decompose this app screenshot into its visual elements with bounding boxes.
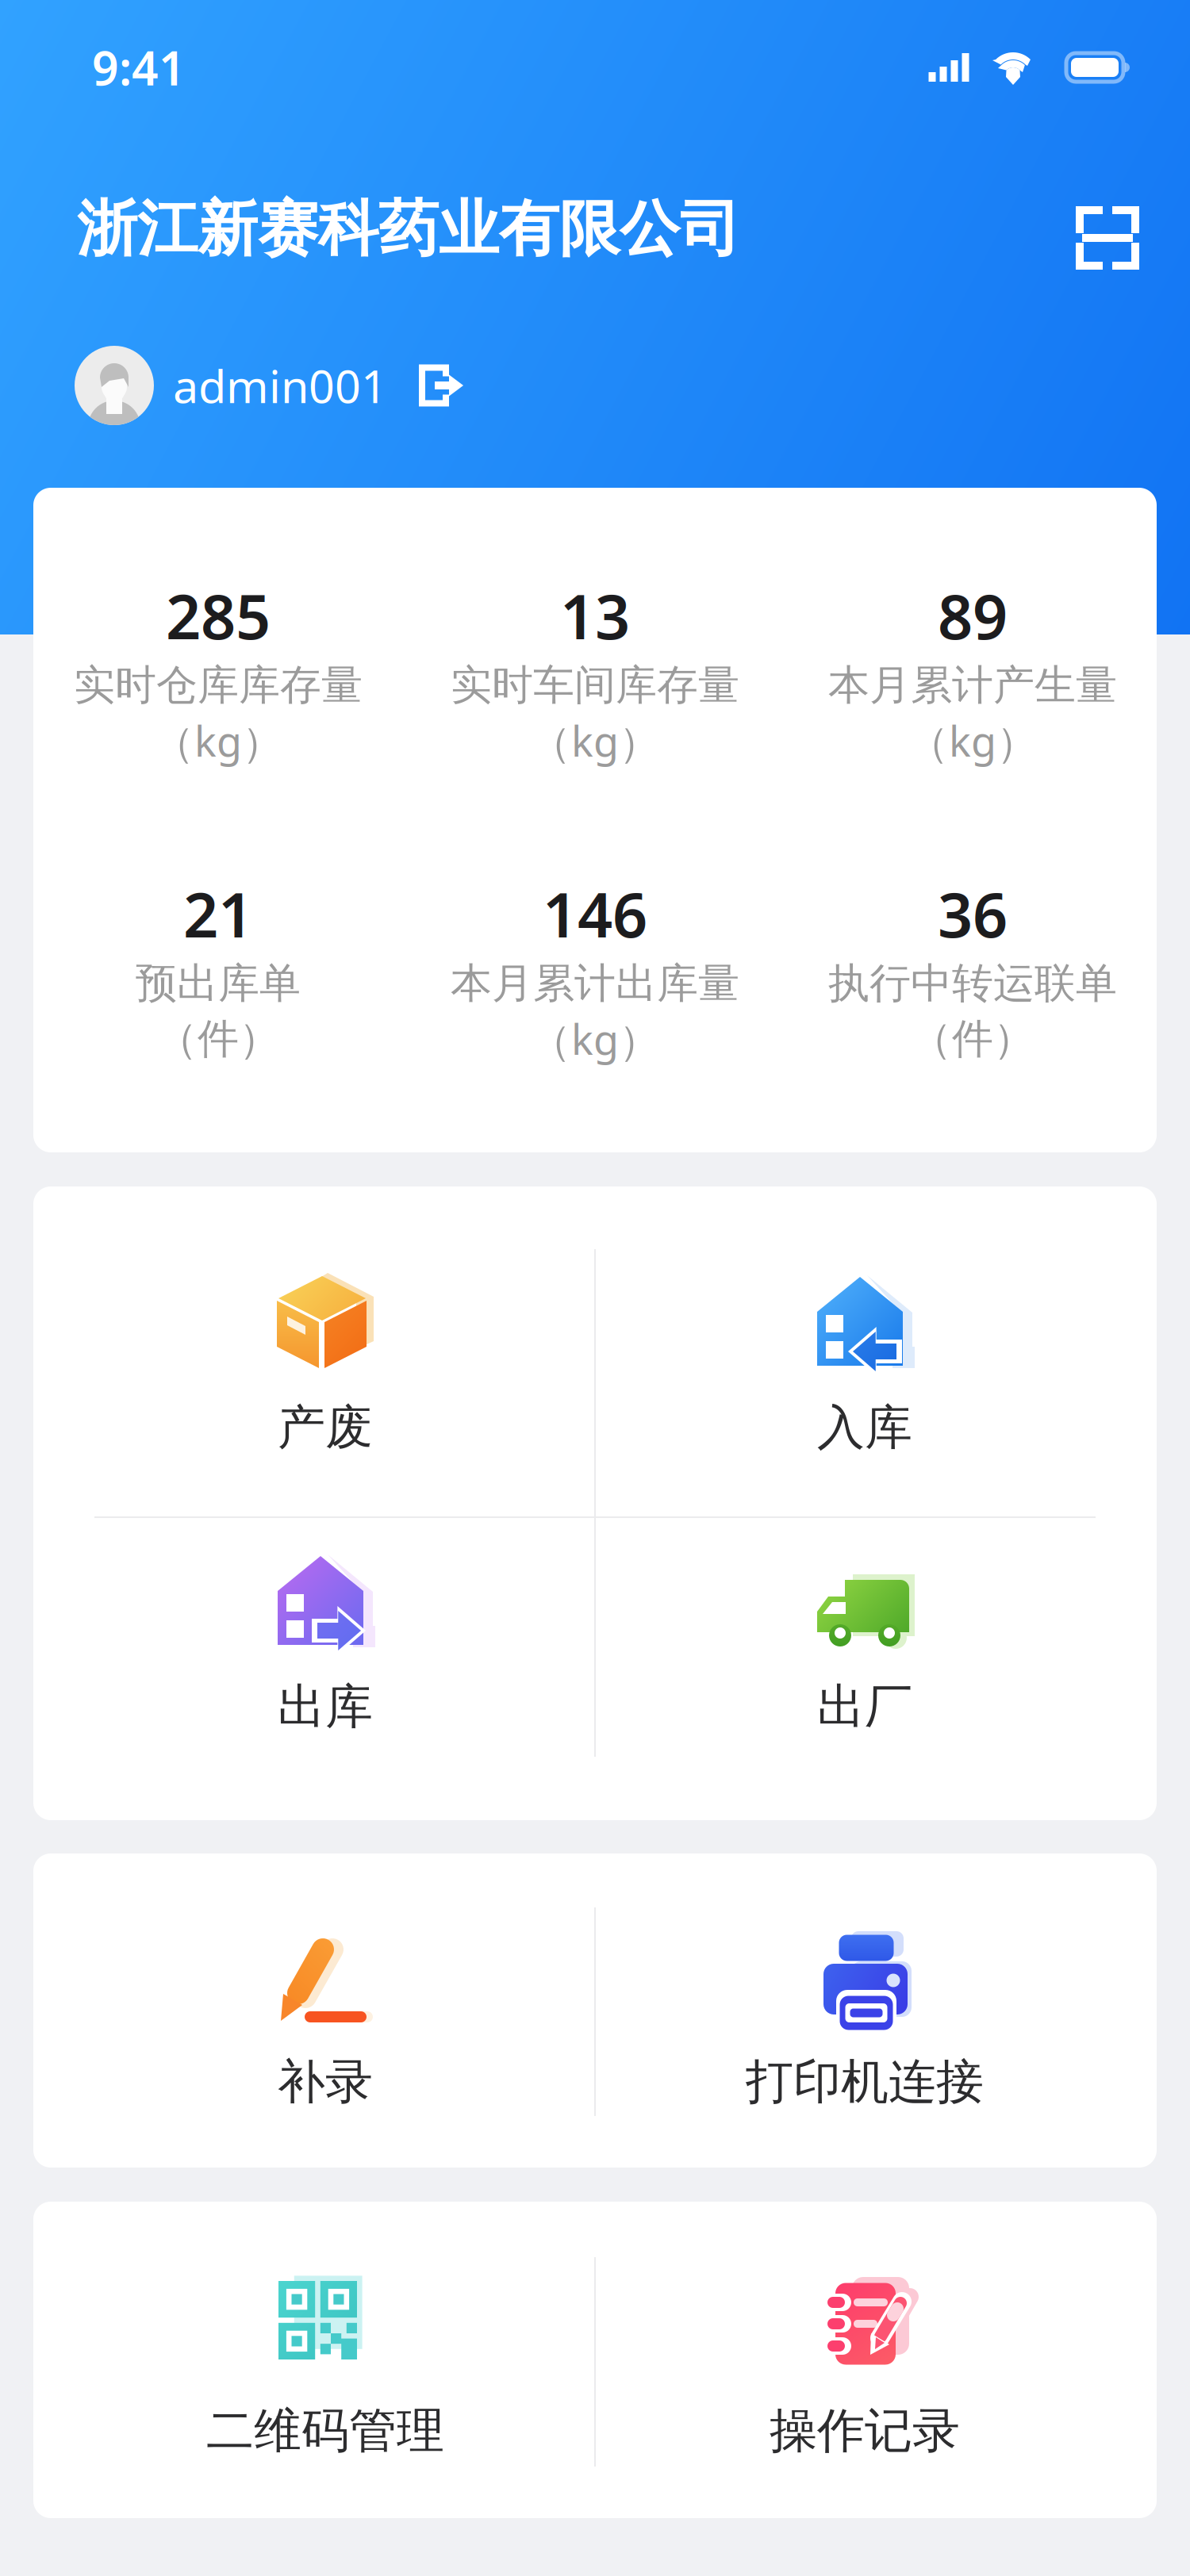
button[interactable]: 出库 [0, 0, 1190, 2576]
staticText: 13 [560, 575, 630, 656]
staticText: 操作记录 [770, 2402, 960, 2460]
button[interactable]: 产废 [0, 0, 1190, 2576]
button[interactable]: 补录 [0, 0, 1190, 2576]
button[interactable]: 操作记录 [0, 0, 1190, 2576]
staticText: 实时仓库库存量 [74, 660, 363, 711]
staticText: 打印机连接 [746, 2053, 984, 2111]
staticText: 本月累计出库量 [451, 958, 739, 1009]
staticText: 补录 [278, 2053, 373, 2111]
staticText: 21 [183, 873, 253, 954]
staticText: （kg） [908, 713, 1038, 768]
staticText: 浙江新赛科药业有限公司 [77, 192, 740, 266]
staticText: 产废 [278, 1398, 373, 1457]
staticText: 预出库单 [136, 958, 301, 1009]
button[interactable]: admin001 [75, 342, 495, 429]
staticText: （件） [156, 1014, 280, 1064]
staticText: admin001 [173, 355, 387, 416]
staticText: 9:41 [92, 36, 186, 98]
staticText: 89 [938, 575, 1008, 656]
staticText: 入库 [817, 1398, 912, 1457]
staticText: 出厂 [817, 1678, 912, 1736]
button[interactable]: 入库 [0, 0, 1190, 2576]
button[interactable]: 出厂 [0, 0, 1190, 2576]
staticText: 执行中转运联单 [828, 958, 1117, 1009]
button[interactable]: 打印机连接 [0, 0, 1190, 2576]
staticText: 146 [543, 873, 647, 954]
staticText: 出库 [278, 1678, 373, 1736]
staticText: （kg） [530, 713, 660, 768]
staticText: （kg） [153, 713, 283, 768]
staticText: 285 [166, 575, 271, 656]
staticText: 本月累计产生量 [828, 660, 1117, 711]
staticText: 实时车间库存量 [451, 660, 739, 711]
button[interactable]: 扫一扫 [1076, 206, 1139, 270]
staticText: 二维码管理 [206, 2402, 444, 2460]
button[interactable]: 二维码管理 [0, 0, 1190, 2576]
staticText: （件） [911, 1014, 1035, 1064]
staticText: （kg） [530, 1011, 660, 1066]
staticText: 36 [938, 873, 1008, 954]
